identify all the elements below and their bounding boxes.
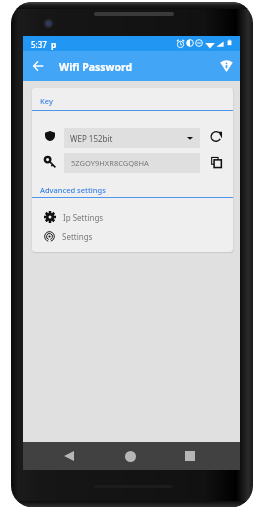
button[interactable]: Back (28, 56, 48, 76)
staticText: WEP 152bit (70, 133, 113, 144)
staticText: p (51, 39, 57, 51)
button[interactable]: Wifi info (216, 55, 237, 76)
staticText: Key (40, 96, 53, 106)
button[interactable]: Refresh (205, 125, 227, 147)
button[interactable]: Recents (180, 446, 200, 466)
button[interactable]: Back (59, 446, 79, 466)
staticText: Ip Settings (63, 212, 104, 223)
button[interactable]: Copy (205, 151, 227, 173)
staticText: Wifi Password (59, 60, 133, 74)
staticText: Advanced settings (40, 185, 106, 195)
staticText: 5:37 (31, 39, 47, 50)
button[interactable]: 5ZGOY9HXR8CGQ8HA (64, 153, 200, 173)
button[interactable]: Settings (32, 226, 233, 246)
staticText: Settings (62, 231, 93, 242)
staticText: 5ZGOY9HXR8CGQ8HA (71, 158, 149, 168)
button[interactable]: Ip Settings (32, 207, 233, 227)
button[interactable]: WEP 152bit (64, 128, 200, 148)
button[interactable]: Home (120, 446, 140, 466)
